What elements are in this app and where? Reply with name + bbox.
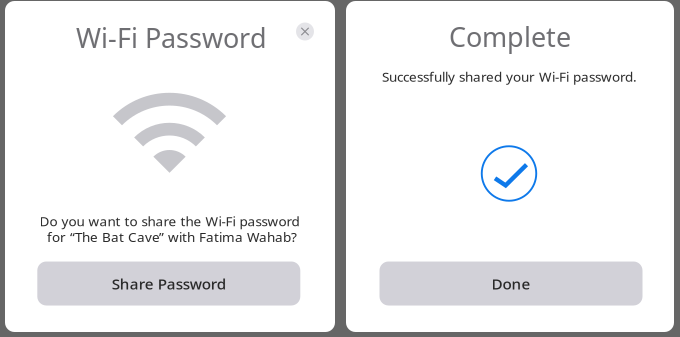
- staticText: Complete: [449, 18, 571, 55]
- staticText: Successfully shared your Wi-Fi password.: [382, 67, 637, 86]
- button[interactable]: Share Password: [37, 261, 300, 305]
- staticText: Share Password: [112, 273, 226, 294]
- button[interactable]: Close: [296, 22, 314, 40]
- button[interactable]: Done: [379, 261, 642, 305]
- staticText: Done: [491, 273, 530, 294]
- staticText: Do you want to share the Wi-Fi password: [39, 212, 299, 230]
- staticText: Wi-Fi Password: [76, 19, 267, 56]
- staticText: for “The Bat Cave” with Fatima Wahab?: [47, 228, 297, 246]
